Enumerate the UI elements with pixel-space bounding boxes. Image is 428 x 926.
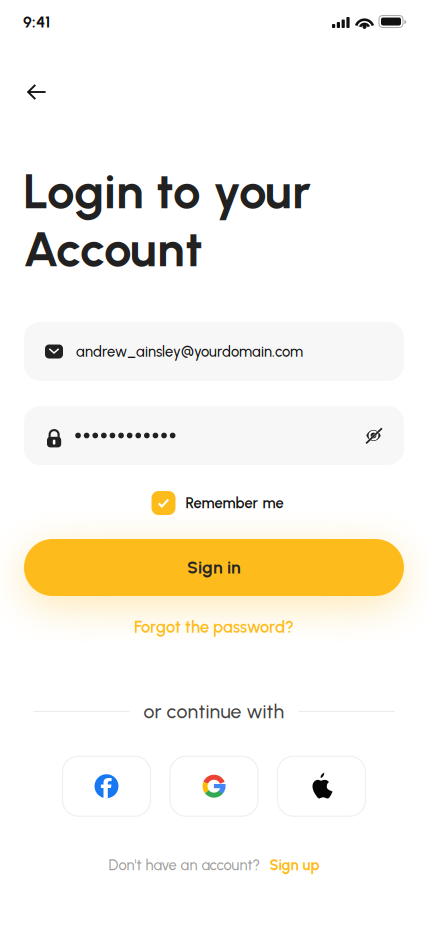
- button[interactable]: Sign in: [24, 539, 404, 596]
- staticText: Account: [23, 219, 203, 279]
- button[interactable]: Forgot the password?: [134, 617, 294, 637]
- staticText: andrew_ainsley@yourdomain.com: [76, 343, 303, 360]
- staticText: Sign up: [269, 856, 319, 874]
- button[interactable]: Sign up: [269, 856, 319, 874]
- button[interactable]: Continue with Facebook: [62, 756, 150, 816]
- button[interactable]: Back: [27, 75, 65, 109]
- staticText: 9:41: [23, 12, 50, 32]
- staticText: Forgot the password?: [134, 617, 294, 637]
- staticText: Login to your: [23, 161, 311, 221]
- staticText: Remember me: [185, 494, 283, 512]
- staticText: Don't have an account?: [108, 856, 260, 874]
- button[interactable]: Continue with Google: [170, 756, 258, 816]
- button[interactable]: Remember me: [151, 491, 283, 515]
- staticText: Sign in: [187, 557, 241, 578]
- staticText: or continue with: [143, 700, 284, 723]
- button[interactable]: Continue with Apple: [277, 756, 365, 816]
- button[interactable]: Show password: [357, 418, 391, 452]
